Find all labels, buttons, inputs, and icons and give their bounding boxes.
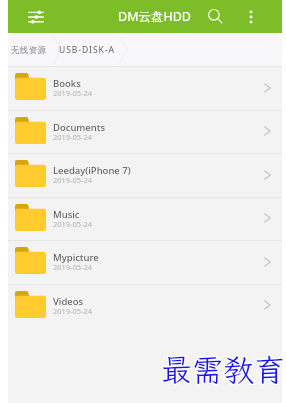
staticText: 2019-05-24 [53, 132, 93, 142]
button[interactable]: Mypicture [8, 241, 282, 285]
button[interactable]: Music [8, 198, 282, 241]
staticText: Documents [53, 121, 106, 134]
staticText: Videos [53, 295, 84, 308]
button[interactable]: Documents [8, 111, 282, 154]
button[interactable]: Leeday(iPhone 7) [8, 154, 282, 198]
staticText: 2019-05-24 [53, 306, 93, 316]
staticText: 最需教育 [160, 349, 284, 390]
staticText: 最需教育 [160, 348, 284, 389]
staticText: 最需教育 [161, 349, 285, 390]
staticText: Leeday(iPhone 7) [53, 164, 131, 177]
staticText: 最需教育 [162, 350, 286, 391]
staticText: 2019-05-24 [53, 88, 93, 98]
staticText: 最需教育 [161, 348, 285, 389]
staticText: 最需教育 [162, 348, 286, 389]
button[interactable]: Filter [22, 3, 50, 31]
staticText: 最需教育 [160, 350, 284, 391]
button[interactable]: 无线资源 [8, 38, 51, 63]
staticText: 2019-05-24 [53, 175, 93, 185]
button[interactable]: Search [202, 3, 230, 31]
staticText: Music [53, 208, 80, 221]
staticText: Mypicture [53, 251, 99, 264]
button[interactable]: USB-DISK-A [51, 37, 123, 63]
staticText: USB-DISK-A [59, 44, 115, 56]
staticText: DM云盘HDD [118, 8, 191, 25]
staticText: 最需教育 [161, 350, 285, 391]
staticText: 2019-05-24 [53, 219, 93, 229]
button[interactable]: More options [237, 3, 265, 31]
staticText: 最需教育 [162, 349, 286, 390]
button[interactable]: Videos [8, 285, 282, 328]
button[interactable]: Books [8, 67, 282, 111]
staticText: 无线资源 [11, 45, 47, 56]
staticText: 2019-05-24 [53, 262, 93, 272]
staticText: Books [53, 77, 81, 90]
